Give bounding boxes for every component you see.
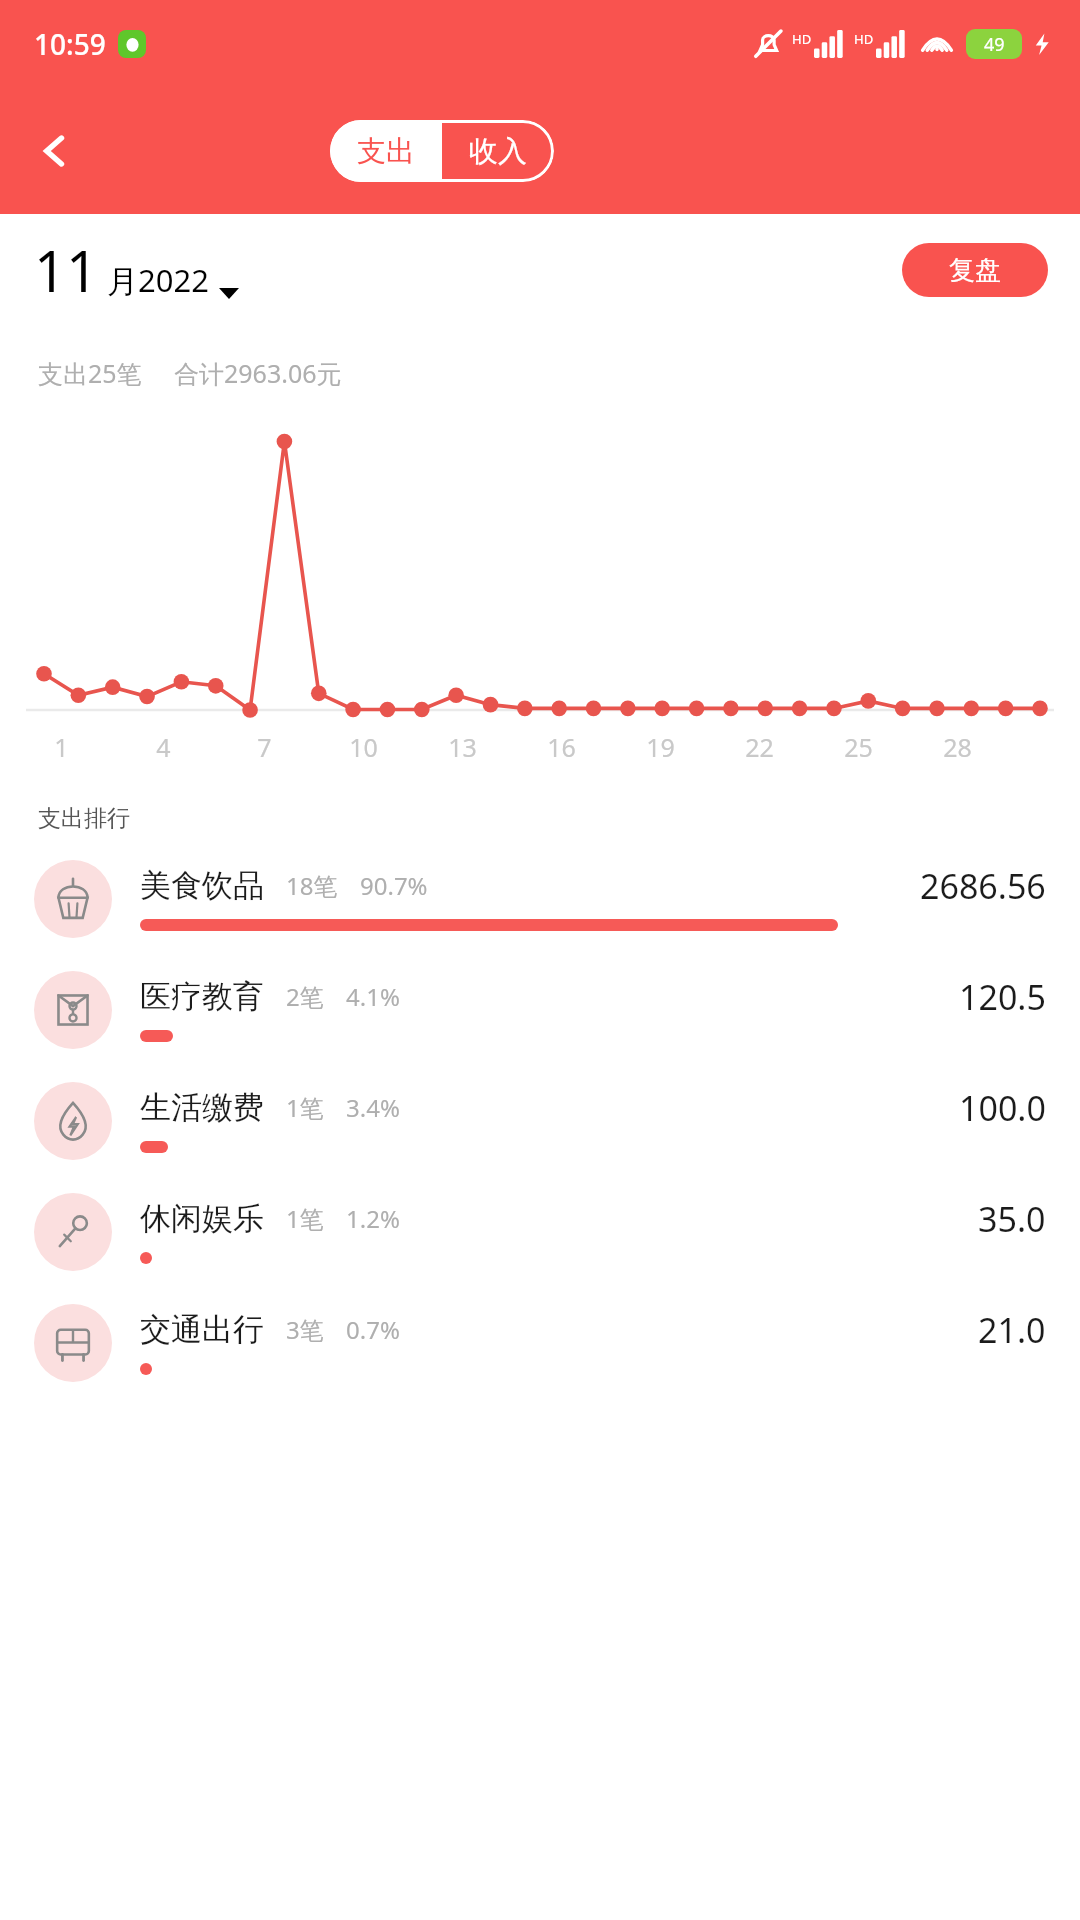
button[interactable]: 复盘 xyxy=(902,243,1048,297)
staticText: 4.1% xyxy=(346,980,400,1013)
staticText: 收入 xyxy=(469,133,527,170)
staticText: 复盘 xyxy=(949,254,1001,287)
staticText: 休闲娱乐 xyxy=(140,1199,264,1238)
staticText: 11 xyxy=(34,232,99,308)
staticText: 支出排行 xyxy=(38,804,130,833)
button[interactable]: 交通出行 xyxy=(0,1287,1080,1398)
staticText: 100.0 xyxy=(959,1085,1046,1131)
button[interactable]: 生活缴费 xyxy=(0,1065,1080,1176)
button[interactable]: 收入 xyxy=(442,120,554,182)
staticText: 7 xyxy=(257,730,272,764)
button[interactable]: 医疗教育 xyxy=(0,954,1080,1065)
staticText: 交通出行 xyxy=(140,1310,264,1349)
button[interactable]: 美食饮品 xyxy=(0,843,1080,954)
staticText: 生活缴费 xyxy=(140,1088,264,1127)
button[interactable]: Back xyxy=(22,118,88,184)
staticText: 美食饮品 xyxy=(140,866,264,905)
staticText: 35.0 xyxy=(978,1196,1046,1242)
staticText: 22 xyxy=(745,730,774,764)
button[interactable]: 11 xyxy=(34,232,239,308)
staticText: HD xyxy=(854,30,874,48)
staticText: 4 xyxy=(156,730,171,764)
staticText: 1笔 xyxy=(286,1091,324,1124)
staticText: 10:59 xyxy=(34,25,106,63)
staticText: 2笔 xyxy=(286,980,324,1013)
staticText: 90.7% xyxy=(360,869,428,902)
staticText: 支出 xyxy=(357,133,415,170)
staticText: 合计2963.06元 xyxy=(174,356,342,390)
staticText: 16 xyxy=(547,730,576,764)
staticText: 10 xyxy=(349,730,378,764)
staticText: 13 xyxy=(448,730,477,764)
staticText: 49 xyxy=(984,32,1005,57)
staticText: 21.0 xyxy=(978,1307,1046,1353)
staticText: 医疗教育 xyxy=(140,977,264,1016)
staticText: 3.4% xyxy=(346,1091,400,1124)
staticText: 25 xyxy=(844,730,873,764)
staticText: 19 xyxy=(646,730,675,764)
staticText: 18笔 xyxy=(286,869,338,902)
staticText: 1 xyxy=(54,730,69,764)
staticText: 月2022 xyxy=(107,259,209,301)
button[interactable]: 支出 xyxy=(330,120,442,182)
staticText: 0.7% xyxy=(346,1313,400,1346)
staticText: 1笔 xyxy=(286,1202,324,1235)
staticText: 2686.56 xyxy=(920,863,1046,909)
staticText: 1.2% xyxy=(346,1202,400,1235)
staticText: 3笔 xyxy=(286,1313,324,1346)
staticText: 28 xyxy=(943,730,972,764)
staticText: 支出25笔 xyxy=(38,356,142,390)
staticText: HD xyxy=(792,30,812,48)
button[interactable]: 休闲娱乐 xyxy=(0,1176,1080,1287)
staticText: 120.5 xyxy=(959,974,1046,1020)
